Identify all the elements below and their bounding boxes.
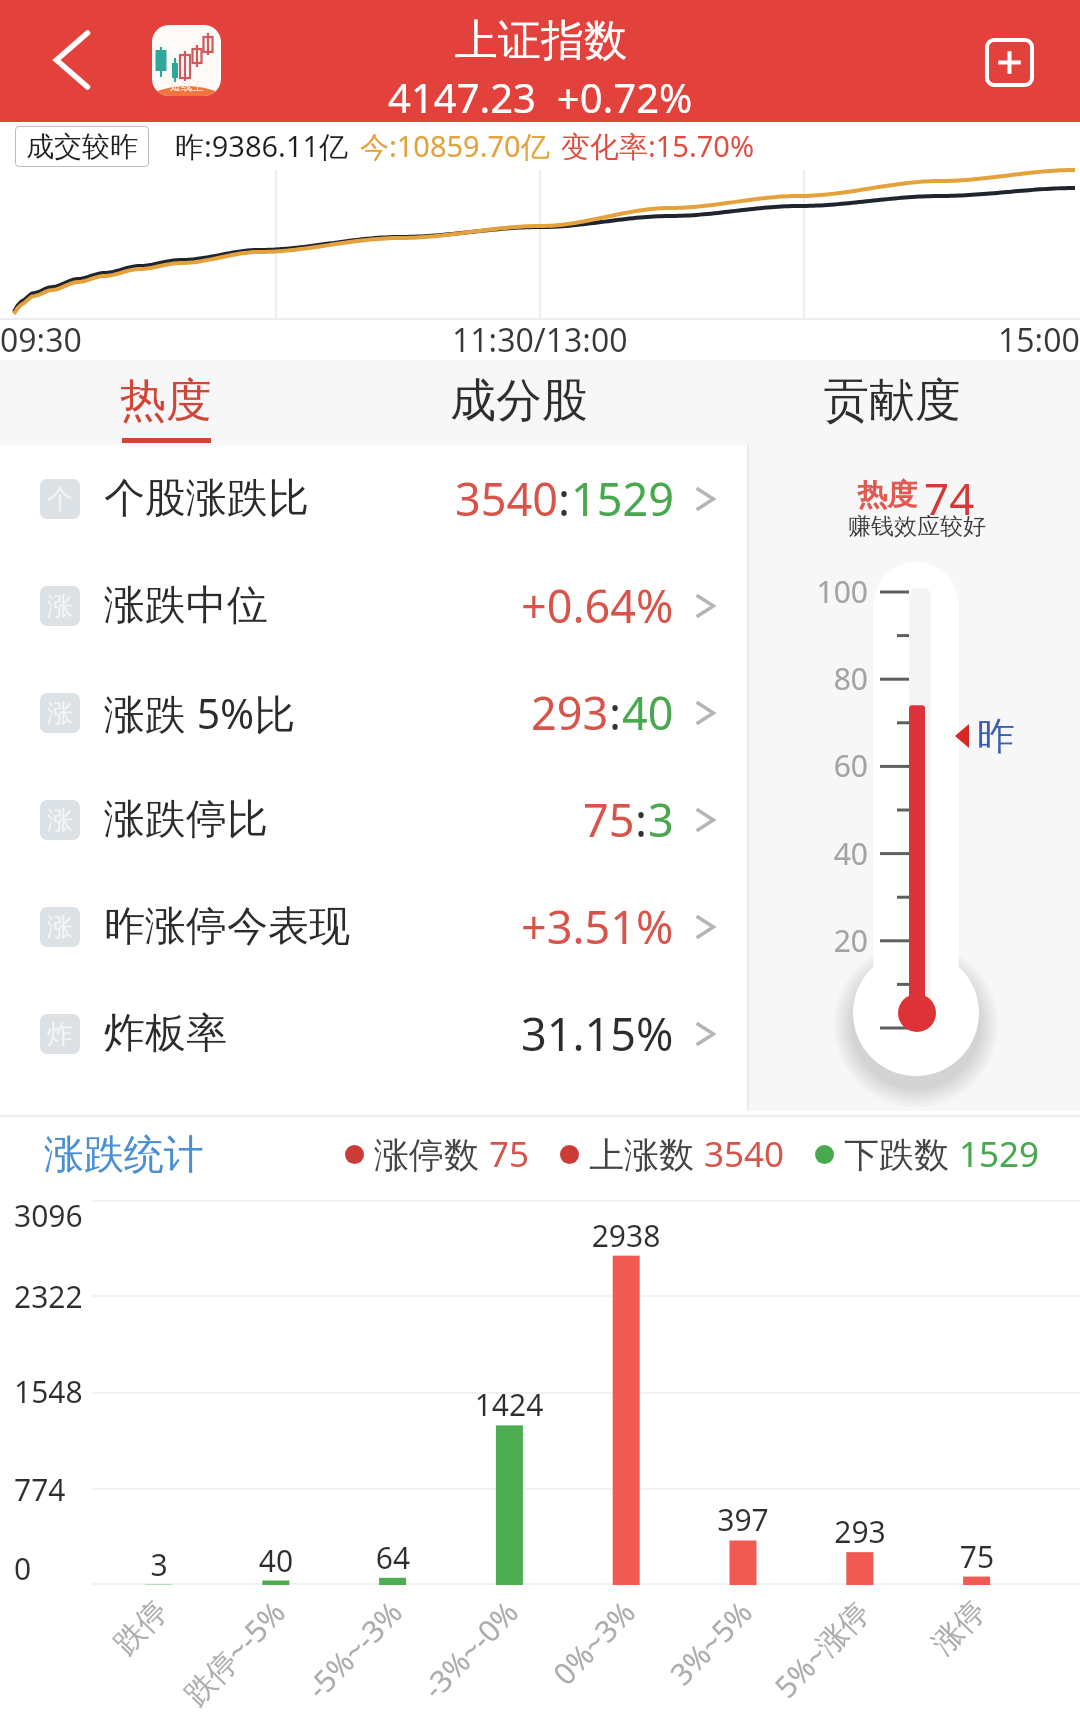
staticText: 炸板率 xyxy=(104,1008,227,1060)
staticText: 跌停~-5% xyxy=(174,1592,294,1713)
staticText: 20 xyxy=(748,920,868,961)
button[interactable]: 涨停数 xyxy=(345,1130,530,1178)
button[interactable]: Duanxianwang app icon xyxy=(152,25,221,96)
staticText: 3 xyxy=(99,1544,219,1585)
staticText: 跌停 xyxy=(106,1593,175,1662)
staticText: 2938 xyxy=(566,1215,686,1256)
staticText: 下跌数 xyxy=(844,1130,959,1178)
staticText: 75 xyxy=(489,1130,530,1178)
staticText: 3 xyxy=(648,789,674,850)
staticText: 1424 xyxy=(449,1384,569,1425)
button[interactable]: 个 xyxy=(0,445,748,552)
staticText: : xyxy=(635,789,648,850)
button[interactable]: 成交较昨 xyxy=(15,126,149,167)
staticText: 100 xyxy=(748,571,868,612)
staticText: 11:30/13:00 xyxy=(452,318,628,362)
staticText: 293 xyxy=(531,682,609,743)
staticText: 0 xyxy=(14,1548,32,1589)
staticText: 涨 xyxy=(47,804,73,837)
staticText: -3%~-0% xyxy=(413,1592,527,1708)
staticText: 昨 xyxy=(977,712,1015,760)
staticText: : xyxy=(558,468,571,529)
staticText: 炸 xyxy=(47,1018,73,1051)
staticText: 09:30 xyxy=(0,318,82,362)
button[interactable]: Back xyxy=(0,0,125,122)
staticText: 涨 xyxy=(47,697,73,730)
staticText: 75 xyxy=(917,1536,1037,1577)
staticText: 1529 xyxy=(959,1130,1040,1178)
staticText: 15:00 xyxy=(998,318,1080,362)
button[interactable]: 贡献度 xyxy=(782,360,1002,445)
staticText: 今:10859.70亿 xyxy=(360,126,550,166)
staticText: 涨停数 xyxy=(374,1130,489,1178)
staticText: 5%~涨停 xyxy=(765,1592,878,1707)
button[interactable]: 涨 xyxy=(0,873,748,980)
staticText: 成分股 xyxy=(450,372,588,430)
staticText: 40 xyxy=(748,833,868,874)
staticText: 1548 xyxy=(14,1371,83,1412)
staticText: 64 xyxy=(333,1537,453,1578)
button[interactable]: Add to watchlist xyxy=(985,38,1034,87)
staticText: 涨停 xyxy=(924,1593,993,1662)
staticText: +3.51% xyxy=(521,896,674,957)
button[interactable]: 炸 xyxy=(0,980,748,1087)
staticText: 成交较昨 xyxy=(26,129,138,164)
staticText: +0.64% xyxy=(521,575,674,636)
staticText: 涨 xyxy=(47,911,73,944)
staticText: 774 xyxy=(14,1469,66,1510)
staticText: 31.15% xyxy=(521,1003,674,1064)
staticText: 4147.23 +0.72% xyxy=(388,70,693,124)
button[interactable]: 成分股 xyxy=(409,360,629,445)
staticText: 热度 xyxy=(120,372,212,430)
staticText: 3%~5% xyxy=(660,1592,761,1694)
staticText: 个股涨跌比 xyxy=(104,473,309,525)
button[interactable]: 热度 xyxy=(56,360,276,445)
staticText: 涨跌中位 xyxy=(104,580,268,632)
staticText: 涨跌 5%比 xyxy=(104,685,296,741)
staticText: 涨 xyxy=(47,590,73,623)
staticText: 昨:9386.11亿 xyxy=(175,126,349,166)
staticText: 75 xyxy=(583,789,635,850)
staticText: 短线王 xyxy=(170,79,203,93)
staticText: 上涨数 xyxy=(589,1130,704,1178)
staticText: 3540 xyxy=(704,1130,785,1178)
staticText: 3096 xyxy=(14,1195,83,1236)
staticText: 昨涨停今表现 xyxy=(104,901,350,953)
staticText: 赚钱效应较好 xyxy=(848,512,986,541)
button[interactable]: 上涨数 xyxy=(560,1130,785,1178)
staticText: : xyxy=(609,682,622,743)
staticText: 上证指数 xyxy=(455,14,627,68)
staticText: 74 xyxy=(924,468,975,528)
staticText: 3540 xyxy=(455,468,558,529)
staticText: 293 xyxy=(800,1511,920,1552)
staticText: 2322 xyxy=(14,1276,83,1317)
staticText: 0%~3% xyxy=(543,1592,644,1694)
staticText: 变化率:15.70% xyxy=(561,126,754,166)
staticText: 397 xyxy=(683,1499,803,1540)
staticText: -5%~-3% xyxy=(297,1592,411,1708)
button[interactable]: 涨 xyxy=(0,659,748,766)
staticText: 80 xyxy=(748,658,868,699)
staticText: 涨跌停比 xyxy=(104,794,268,846)
staticText: 热度 xyxy=(857,476,917,514)
button[interactable]: 涨 xyxy=(0,766,748,873)
staticText: 40 xyxy=(622,682,674,743)
button[interactable]: 下跌数 xyxy=(815,1130,1040,1178)
staticText: 60 xyxy=(748,745,868,786)
staticText: 贡献度 xyxy=(823,372,961,430)
staticText: 涨跌统计 xyxy=(44,1129,204,1179)
button[interactable]: 涨 xyxy=(0,552,748,659)
staticText: 40 xyxy=(216,1540,336,1581)
staticText: 1529 xyxy=(571,468,674,529)
staticText: 个 xyxy=(47,483,73,516)
